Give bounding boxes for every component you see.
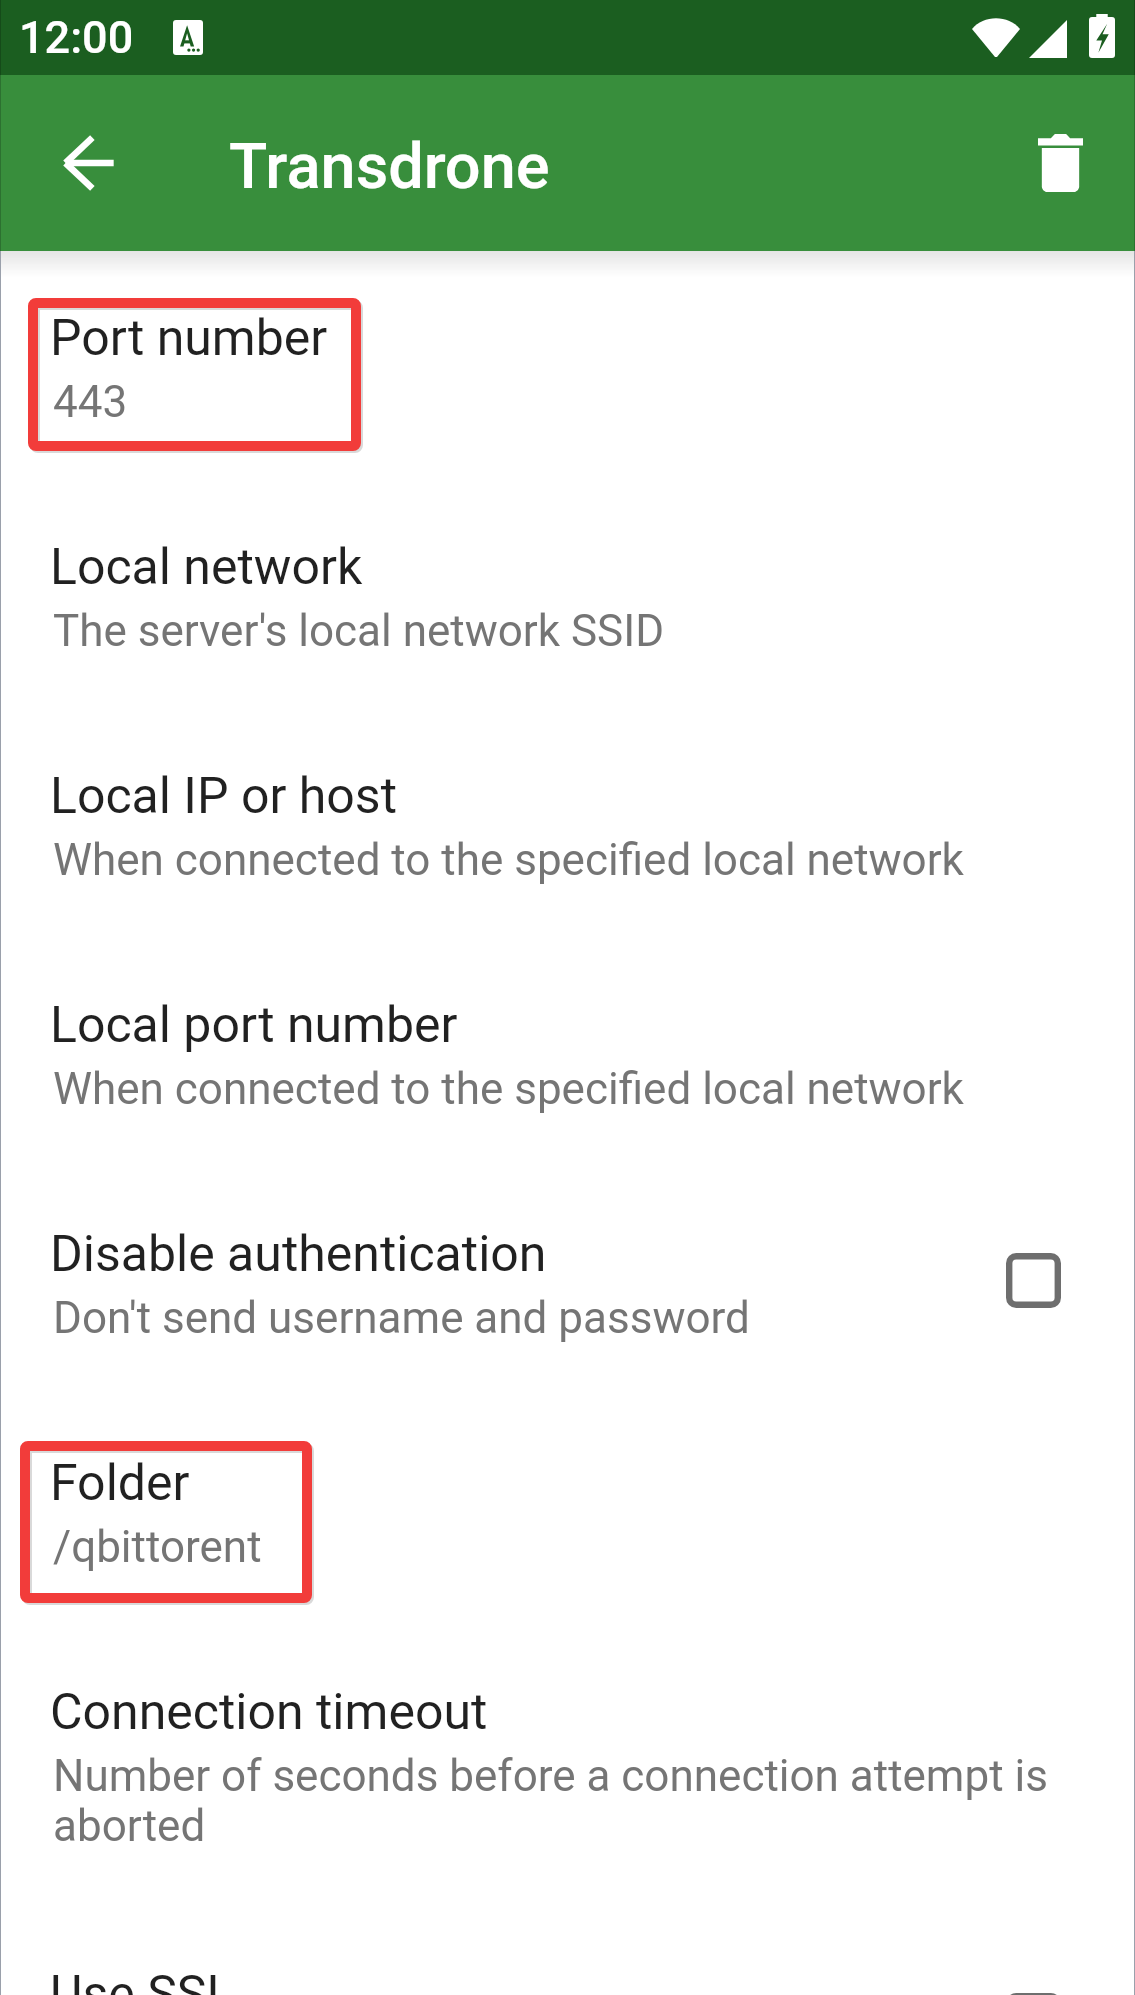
staticText: Connection timeout xyxy=(50,1683,488,1742)
staticText: Port number xyxy=(50,309,328,368)
button[interactable] xyxy=(0,718,1135,947)
staticText: Number of seconds before a connection at… xyxy=(53,1750,1055,1852)
button[interactable] xyxy=(0,1405,1135,1634)
staticText: Use SSL xyxy=(50,1965,234,1995)
button[interactable]: Delete xyxy=(1006,109,1114,217)
staticText: When connected to the specified local ne… xyxy=(53,834,1055,886)
button[interactable] xyxy=(0,1634,1135,1916)
staticText: Transdrone xyxy=(229,130,550,204)
button[interactable]: Disable authentication xyxy=(1006,1253,1061,1308)
staticText: Local network xyxy=(50,538,363,597)
button[interactable] xyxy=(0,1176,1135,1405)
staticText: 443 xyxy=(53,376,1055,428)
staticText: /qbittorent xyxy=(53,1521,1055,1573)
staticText: Folder xyxy=(50,1454,190,1513)
button[interactable] xyxy=(0,489,1135,718)
staticText: Don't send username and password xyxy=(53,1292,1055,1344)
staticText: The server's local network SSID xyxy=(53,605,1055,657)
staticText: Local port number xyxy=(50,996,458,1055)
staticText: 12:00 xyxy=(19,11,134,64)
staticText: When connected to the specified local ne… xyxy=(53,1063,1055,1115)
staticText: Local IP or host xyxy=(50,767,397,826)
button[interactable] xyxy=(0,1916,1135,1995)
button[interactable] xyxy=(0,947,1135,1176)
button[interactable]: Back xyxy=(37,111,141,215)
staticText: Disable authentication xyxy=(50,1225,547,1284)
button[interactable] xyxy=(0,260,1135,489)
button[interactable]: Use SSL xyxy=(1006,1993,1061,1995)
